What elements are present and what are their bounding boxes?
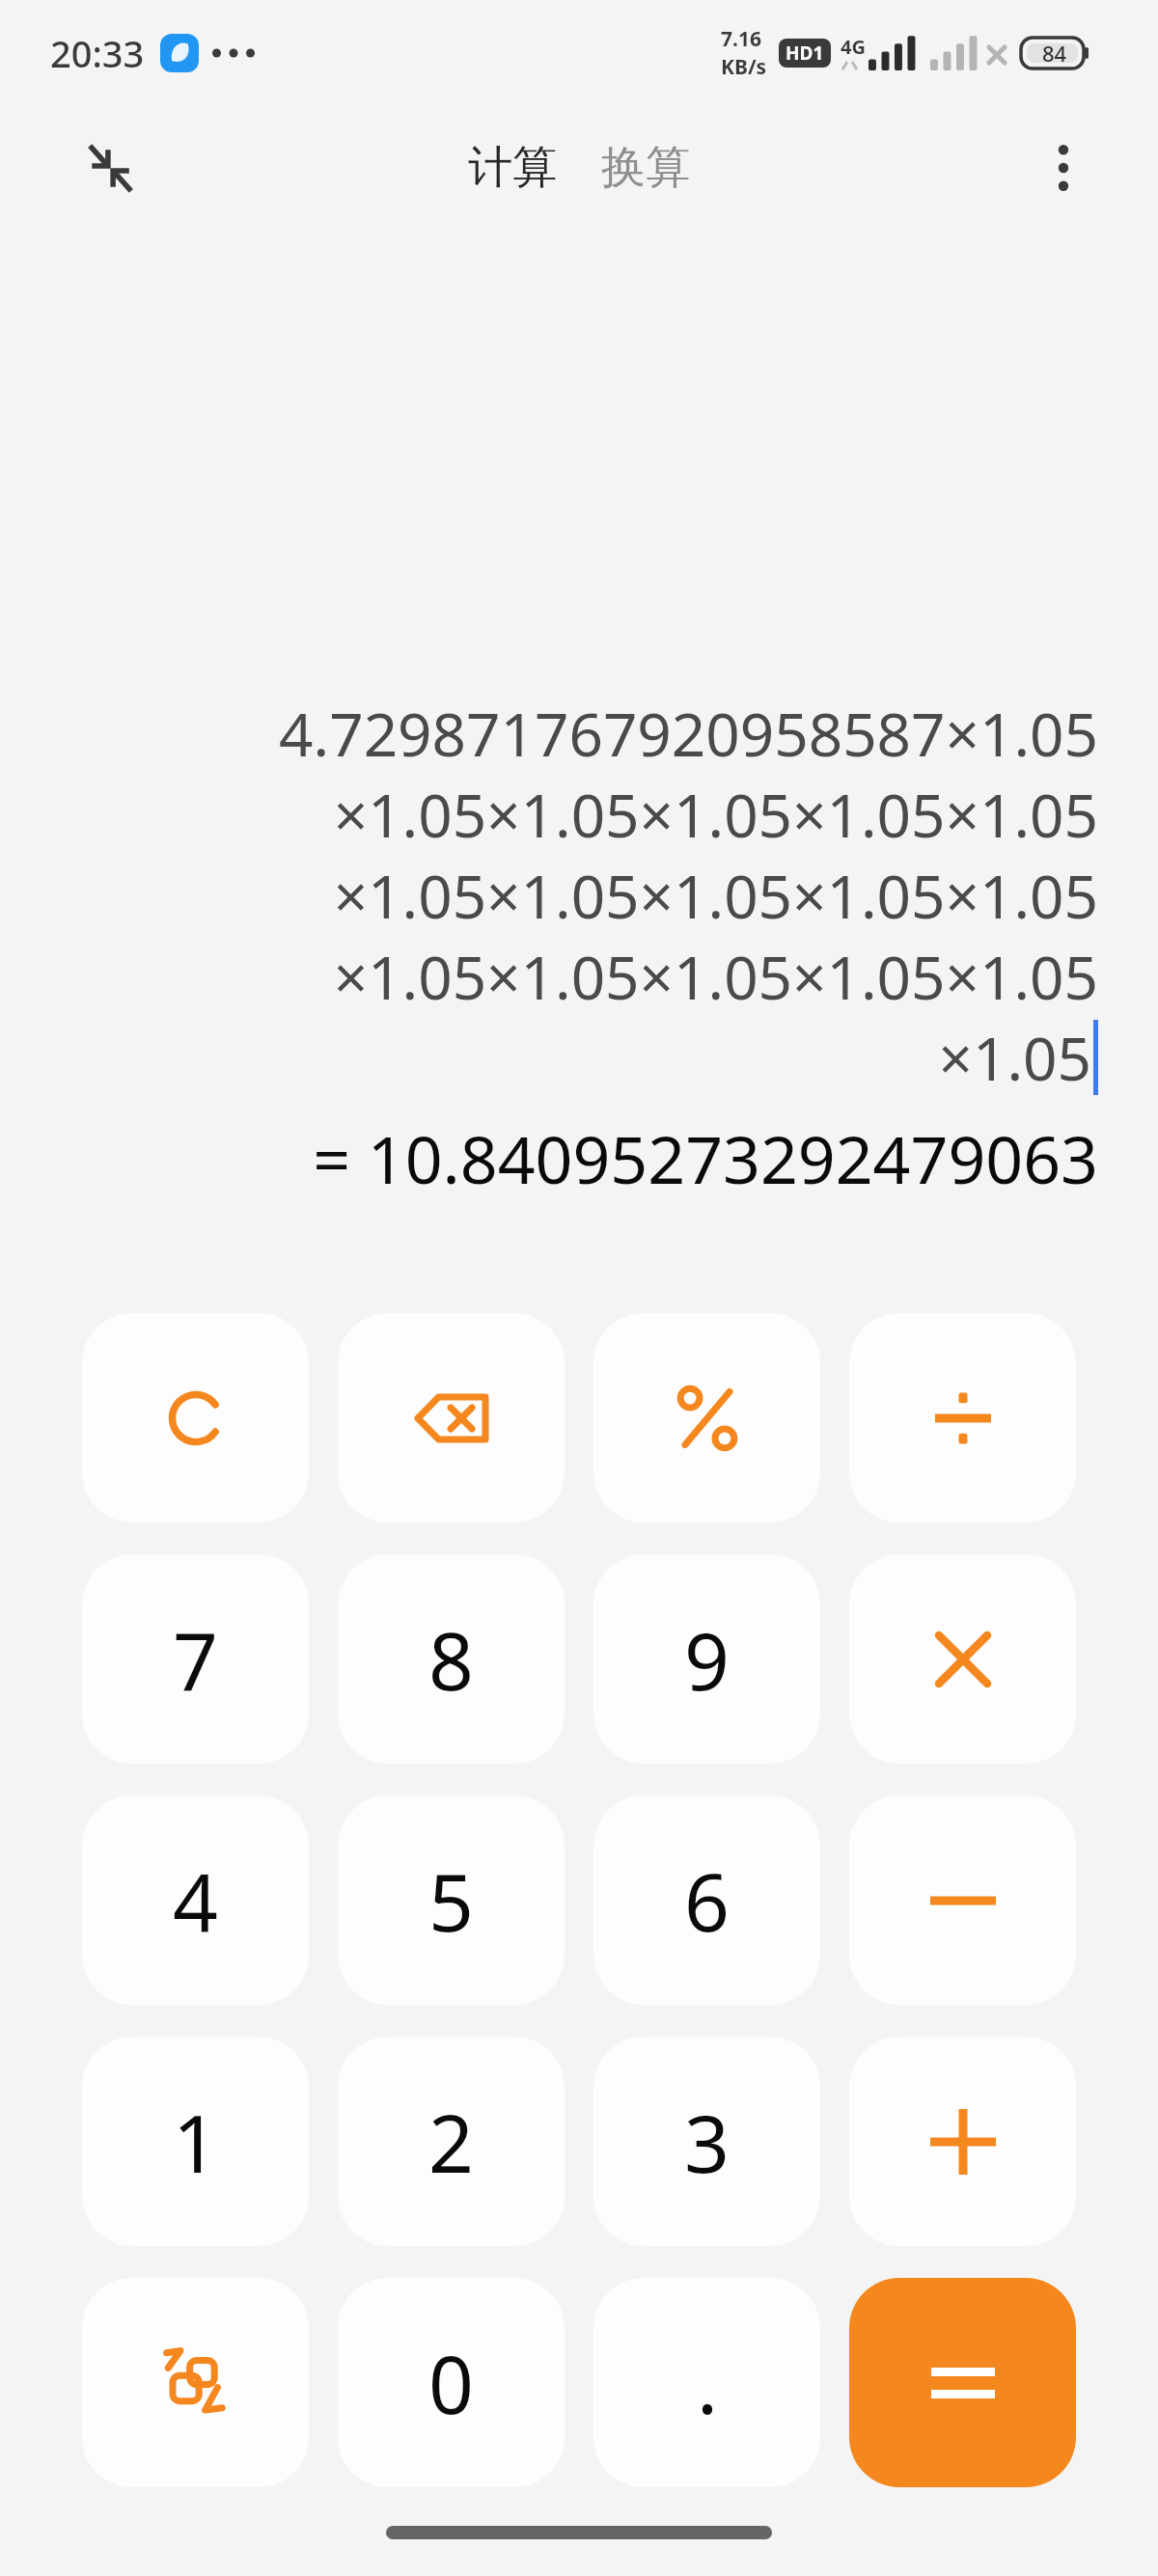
button[interactable]: 7 xyxy=(82,1554,309,1764)
staticText: ×1.05 xyxy=(938,1017,1091,1098)
staticText: 4 xyxy=(173,1847,218,1955)
staticText: 7 xyxy=(173,1605,218,1713)
button[interactable]: 9 xyxy=(593,1554,820,1764)
button[interactable]: 5 xyxy=(338,1795,565,2005)
button[interactable]: Divide xyxy=(849,1313,1076,1522)
staticText: = 10.84095273292479063 xyxy=(313,1113,1098,1203)
button[interactable]: 3 xyxy=(593,2037,820,2246)
button[interactable]: 1 xyxy=(82,2037,309,2246)
button[interactable]: 2 xyxy=(338,2037,565,2246)
staticText: 5 xyxy=(428,1847,474,1955)
button[interactable]: 计算 xyxy=(456,132,568,204)
button[interactable]: Clear xyxy=(82,1313,309,1522)
staticText: 20:33 xyxy=(50,28,145,78)
button[interactable]: Percent xyxy=(593,1313,820,1522)
button[interactable]: . xyxy=(593,2278,820,2487)
staticText: . xyxy=(697,2329,718,2437)
staticText: ×1.05×1.05×1.05×1.05×1.05 xyxy=(333,774,1098,855)
button[interactable]: 0 xyxy=(338,2278,565,2487)
staticText: 9 xyxy=(684,1605,730,1713)
staticText: 4.729871767920958587×1.05 xyxy=(279,693,1098,774)
button[interactable]: Plus xyxy=(849,2037,1076,2246)
staticText: 1 xyxy=(173,2088,218,2196)
staticText: 0 xyxy=(428,2329,474,2437)
staticText: 84 xyxy=(1042,39,1067,68)
button[interactable]: Minus xyxy=(849,1795,1076,2005)
staticText: 计算 xyxy=(468,140,557,196)
staticText: 8 xyxy=(428,1605,474,1713)
staticText: HD1 xyxy=(786,41,824,66)
button[interactable]: 6 xyxy=(593,1795,820,2005)
staticText: 7.16 xyxy=(721,25,761,53)
staticText: 2 xyxy=(428,2088,474,2196)
staticText: 换算 xyxy=(601,140,690,196)
button[interactable]: Equals xyxy=(849,2278,1076,2487)
staticText: ×1.05×1.05×1.05×1.05×1.05 xyxy=(333,855,1098,936)
button[interactable]: 8 xyxy=(338,1554,565,1764)
button[interactable]: 4 xyxy=(82,1795,309,2005)
button[interactable]: More options xyxy=(1029,133,1098,203)
staticText: 3 xyxy=(684,2088,730,2196)
staticText: 4G xyxy=(841,34,866,60)
button[interactable]: Multiply xyxy=(849,1554,1076,1764)
staticText: ×1.05×1.05×1.05×1.05×1.05 xyxy=(333,936,1098,1017)
button[interactable]: 换算 xyxy=(590,132,702,204)
staticText: KB/s xyxy=(721,53,767,81)
button[interactable]: Collapse xyxy=(75,133,145,203)
staticText: 6 xyxy=(684,1847,730,1955)
button[interactable]: Backspace xyxy=(338,1313,565,1522)
button[interactable]: Scientific xyxy=(82,2278,309,2487)
